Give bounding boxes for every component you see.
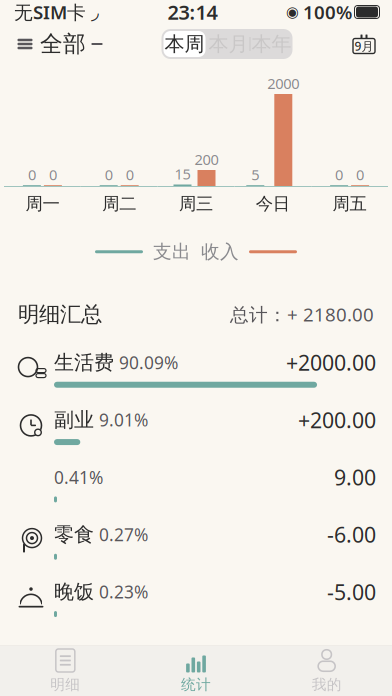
staticText: -5.00 — [327, 578, 376, 606]
staticText: 晚饭 — [54, 580, 94, 604]
staticText: 本周 — [164, 32, 204, 56]
staticText: 0 — [335, 165, 343, 184]
staticText: 今日 — [256, 193, 290, 214]
staticText: 周三 — [179, 193, 213, 214]
staticText: 总计：+ 2180.00 — [230, 302, 374, 327]
button[interactable]: 本周 — [163, 31, 205, 57]
staticText: 统计 — [181, 675, 211, 693]
staticText: 0 — [28, 165, 36, 184]
staticText: 收入 — [201, 240, 239, 263]
button[interactable]: 晚饭 — [0, 569, 392, 626]
staticText: 0.27% — [99, 523, 148, 546]
staticText: 零食 — [54, 522, 94, 547]
staticText: ◞ — [91, 1, 99, 23]
staticText: +2000.00 — [286, 348, 376, 377]
staticText: 周五 — [333, 193, 367, 214]
staticText: 0 — [49, 165, 57, 184]
button[interactable]: 0.41% — [0, 454, 392, 511]
button[interactable]: 零食 — [0, 511, 392, 569]
staticText: 15 — [174, 164, 190, 183]
staticText: 周二 — [102, 193, 136, 214]
staticText: 2000 — [267, 73, 299, 93]
button[interactable]: 全部 — [14, 24, 104, 64]
staticText: 本月 — [208, 32, 248, 56]
staticText: 9月 — [354, 38, 373, 54]
staticText: +200.00 — [298, 406, 376, 434]
staticText: 本年 — [251, 32, 291, 56]
staticText: 200 — [194, 149, 218, 169]
button[interactable]: 生活费 — [0, 339, 392, 397]
staticText: 23:14 — [167, 0, 217, 25]
button[interactable]: 副业 — [0, 397, 392, 454]
staticText: 全部 — [40, 30, 86, 58]
button[interactable]: 统计 — [131, 642, 261, 696]
staticText: 90.09% — [119, 351, 178, 374]
staticText: 明细汇总 — [18, 301, 102, 327]
staticText: 我的 — [312, 675, 342, 693]
staticText: 0 — [105, 165, 113, 184]
button[interactable]: 本年 — [250, 31, 292, 57]
staticText: 9.00 — [334, 463, 376, 491]
button[interactable]: 明细 — [0, 642, 131, 696]
button[interactable]: 选择月份 — [350, 33, 378, 55]
staticText: 周一 — [25, 193, 59, 214]
staticText: 0 — [356, 165, 364, 184]
staticText: 支出 — [153, 240, 191, 263]
staticText: 5 — [251, 165, 259, 184]
staticText: 100% — [303, 0, 352, 24]
staticText: 9.01% — [99, 408, 148, 431]
button[interactable]: 本月 — [207, 31, 249, 57]
staticText: ◉ — [286, 4, 299, 20]
staticText: 明细 — [50, 675, 80, 693]
staticText: 0 — [126, 165, 134, 184]
staticText: 0.23% — [99, 580, 148, 603]
staticText: 0.41% — [54, 466, 103, 489]
staticText: 生活费 — [54, 350, 114, 375]
staticText: -6.00 — [327, 520, 376, 549]
staticText: 无SIM卡 — [14, 0, 86, 24]
button[interactable]: 我的 — [261, 642, 392, 696]
staticText: 副业 — [54, 408, 94, 432]
